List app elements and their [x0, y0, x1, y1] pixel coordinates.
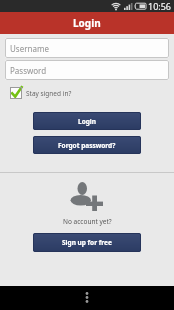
button[interactable]	[73, 286, 101, 310]
button[interactable]: Sign up for free	[33, 233, 141, 252]
staticText: Login	[73, 16, 101, 30]
staticText: No account yet?	[63, 217, 112, 226]
button[interactable]: Forgot password?	[33, 136, 141, 154]
staticText: 10:56	[148, 0, 172, 12]
staticText: Stay signed in?	[26, 89, 72, 98]
staticText: Password	[10, 65, 47, 76]
button[interactable]: Password	[5, 60, 169, 80]
button[interactable]: Username	[5, 38, 169, 58]
staticText: Sign up for free	[62, 238, 112, 247]
button[interactable]: Stay signed in?	[10, 87, 72, 99]
staticText: Username	[10, 43, 49, 54]
staticText: Login	[78, 117, 96, 126]
staticText: Forgot password?	[58, 141, 116, 150]
button[interactable]: Login	[33, 112, 141, 130]
